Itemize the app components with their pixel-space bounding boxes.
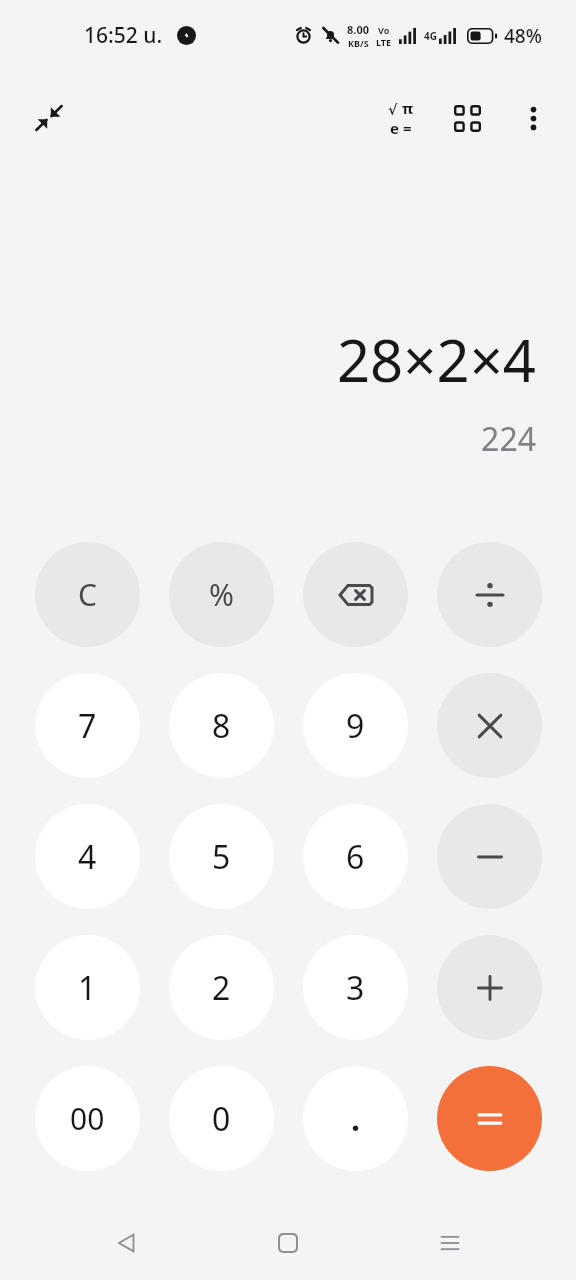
staticText: 2 bbox=[212, 966, 231, 1010]
button[interactable]: 0 bbox=[169, 1066, 274, 1171]
button[interactable]: Back bbox=[90, 1207, 162, 1279]
staticText: Vo bbox=[378, 24, 390, 36]
button[interactable]: 9 bbox=[303, 673, 408, 778]
staticText: 16:52 u. bbox=[84, 21, 163, 50]
button[interactable]: . bbox=[303, 1066, 408, 1171]
staticText: = bbox=[403, 118, 412, 138]
staticText: 48% bbox=[504, 23, 542, 49]
staticText: 8.00 bbox=[347, 22, 369, 37]
staticText: 3 bbox=[346, 966, 365, 1010]
button[interactable]: Home bbox=[252, 1207, 324, 1279]
button[interactable]: 8 bbox=[169, 673, 274, 778]
staticText: 7 bbox=[78, 704, 97, 748]
button[interactable]: Equals bbox=[437, 1066, 542, 1171]
staticText: 4 bbox=[78, 835, 97, 879]
staticText: 28×2×4 bbox=[336, 320, 536, 399]
button[interactable]: 2 bbox=[169, 935, 274, 1040]
button[interactable]: More options bbox=[504, 89, 562, 147]
staticText: C bbox=[78, 574, 97, 615]
staticText: 224 bbox=[481, 417, 536, 461]
button[interactable]: Converters bbox=[438, 89, 496, 147]
staticText: 4G bbox=[424, 29, 437, 43]
button[interactable]: Backspace bbox=[303, 542, 408, 647]
button[interactable]: 7 bbox=[35, 673, 140, 778]
button[interactable]: Minus bbox=[437, 804, 542, 909]
staticText: 0 bbox=[212, 1097, 231, 1141]
staticText: 00 bbox=[70, 1098, 105, 1139]
button[interactable]: 1 bbox=[35, 935, 140, 1040]
staticText: 6 bbox=[346, 835, 365, 879]
button[interactable]: Scientific mode bbox=[372, 89, 430, 147]
button[interactable]: C bbox=[35, 542, 140, 647]
staticText: 9 bbox=[346, 704, 365, 748]
button[interactable]: Recents bbox=[414, 1207, 486, 1279]
button[interactable]: 3 bbox=[303, 935, 408, 1040]
staticText: KB/S bbox=[348, 37, 369, 49]
button[interactable]: 5 bbox=[169, 804, 274, 909]
staticText: LTE bbox=[376, 36, 392, 48]
button[interactable]: 6 bbox=[303, 804, 408, 909]
button[interactable]: Collapse bbox=[20, 89, 78, 147]
staticText: 1 bbox=[78, 966, 97, 1010]
button[interactable]: Divide bbox=[437, 542, 542, 647]
button[interactable]: 00 bbox=[35, 1066, 140, 1171]
button[interactable]: 4 bbox=[35, 804, 140, 909]
staticText: 8 bbox=[212, 704, 231, 748]
staticText: % bbox=[209, 574, 234, 615]
staticText: . bbox=[351, 1097, 360, 1141]
staticText: e bbox=[390, 118, 399, 138]
button[interactable]: Plus bbox=[437, 935, 542, 1040]
staticText: √ bbox=[388, 102, 398, 118]
staticText: 5 bbox=[212, 835, 231, 879]
button[interactable]: % bbox=[169, 542, 274, 647]
staticText: π bbox=[402, 98, 414, 118]
button[interactable]: Multiply bbox=[437, 673, 542, 778]
